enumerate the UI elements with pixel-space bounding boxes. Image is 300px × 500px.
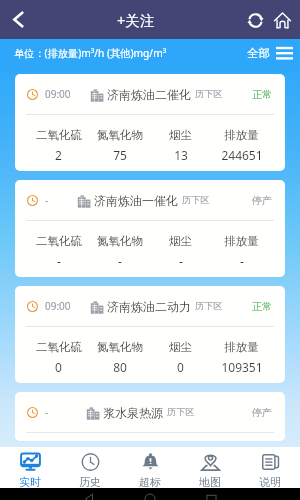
staticText: 2 bbox=[55, 147, 62, 163]
staticText: 109351 bbox=[221, 359, 263, 375]
button[interactable]: Refresh bbox=[243, 8, 267, 32]
staticText: 09:00 bbox=[45, 299, 71, 313]
staticText: 停产 bbox=[252, 406, 272, 419]
staticText: 单位：(排放量)m³/h (其他)mg/m³ bbox=[14, 46, 167, 60]
staticText: 历下区 bbox=[182, 194, 210, 206]
button[interactable]: 09:00 bbox=[15, 74, 285, 171]
staticText: 历下区 bbox=[195, 300, 223, 312]
staticText: 烟尘 bbox=[169, 234, 192, 248]
button[interactable]: Home bbox=[270, 8, 294, 32]
staticText: - bbox=[179, 253, 183, 269]
staticText: - bbox=[118, 253, 122, 269]
staticText: 历下区 bbox=[167, 406, 195, 418]
button[interactable]: - bbox=[15, 180, 285, 277]
staticText: 烟尘 bbox=[169, 128, 192, 142]
staticText: 80 bbox=[113, 359, 127, 375]
staticText: 浆水泉热源 bbox=[103, 405, 163, 420]
staticText: 0 bbox=[177, 359, 184, 375]
staticText: 13 bbox=[174, 147, 188, 163]
staticText: 济南炼油一催化 bbox=[94, 193, 178, 208]
staticText: 说明 bbox=[259, 475, 281, 488]
staticText: 二氧化硫 bbox=[36, 128, 82, 142]
button[interactable]: 说明 bbox=[240, 447, 300, 488]
button[interactable]: 09:00 bbox=[15, 286, 285, 383]
staticText: 0 bbox=[55, 359, 62, 375]
staticText: 09:00 bbox=[45, 87, 71, 101]
staticText: 氮氧化物 bbox=[97, 340, 143, 354]
staticText: - bbox=[45, 405, 49, 419]
staticText: 244651 bbox=[221, 147, 263, 163]
staticText: 氮氧化物 bbox=[97, 234, 143, 248]
staticText: +关注 bbox=[117, 10, 155, 30]
staticText: 排放量 bbox=[224, 340, 259, 354]
button[interactable]: 实时 bbox=[0, 447, 60, 488]
staticText: 烟尘 bbox=[169, 340, 192, 354]
staticText: 正常 bbox=[252, 300, 272, 313]
staticText: 排放量 bbox=[224, 128, 259, 142]
staticText: 地图 bbox=[199, 475, 221, 488]
staticText: 停产 bbox=[252, 194, 272, 207]
staticText: 济南炼油二催化 bbox=[107, 87, 191, 102]
button[interactable]: 全部 bbox=[247, 46, 293, 60]
staticText: 75 bbox=[113, 147, 127, 163]
staticText: 二氧化硫 bbox=[36, 234, 82, 248]
staticText: 历史 bbox=[79, 475, 101, 488]
staticText: 氮氧化物 bbox=[97, 128, 143, 142]
staticText: 二氧化硫 bbox=[36, 340, 82, 354]
staticText: 排放量 bbox=[224, 234, 259, 248]
button[interactable]: 历史 bbox=[60, 447, 120, 488]
staticText: 济南炼油二动力 bbox=[107, 299, 191, 314]
staticText: - bbox=[57, 253, 61, 269]
staticText: - bbox=[240, 253, 244, 269]
staticText: 超标 bbox=[139, 475, 161, 488]
button[interactable]: - bbox=[15, 392, 285, 441]
staticText: - bbox=[45, 193, 49, 207]
button[interactable]: 地图 bbox=[180, 447, 240, 488]
staticText: 全部 bbox=[247, 46, 270, 60]
staticText: 实时 bbox=[19, 475, 41, 488]
staticText: 正常 bbox=[252, 88, 272, 101]
button[interactable]: Back bbox=[0, 0, 36, 39]
staticText: 历下区 bbox=[195, 88, 223, 100]
button[interactable]: 超标 bbox=[120, 447, 180, 488]
